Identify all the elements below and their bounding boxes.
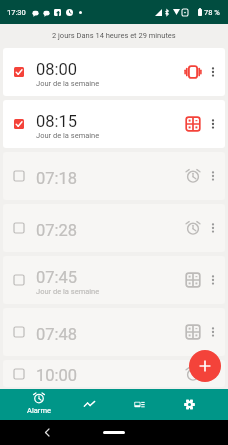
button[interactable]: 08:00 (3, 48, 225, 96)
staticText: 17:30 (7, 8, 26, 17)
button[interactable]: More options (208, 171, 218, 181)
button[interactable]: 08:15 (3, 100, 225, 148)
button[interactable]: More options (208, 369, 218, 379)
staticText: 10:00 (36, 366, 78, 385)
staticText: 07:45 (36, 268, 78, 287)
button[interactable]: 10:00 (3, 360, 225, 387)
button[interactable]: Settings (164, 389, 214, 420)
button[interactable]: News (114, 389, 164, 420)
staticText: Alarme (27, 406, 51, 415)
staticText: 07:28 (36, 221, 78, 240)
button[interactable]: Alarms (14, 389, 64, 420)
staticText: 08:00 (36, 60, 78, 79)
button[interactable]: 07:45 (3, 256, 225, 304)
staticText: 08:15 (36, 112, 78, 131)
button[interactable]: Statistics (64, 389, 114, 420)
button[interactable]: More options (208, 119, 218, 129)
button[interactable]: 07:48 (3, 308, 225, 356)
staticText: 2 jours Dans 14 heures et 29 minutes (52, 31, 176, 40)
button[interactable]: More options (208, 223, 218, 233)
staticText: Jour de la semaine (36, 79, 100, 88)
button[interactable]: Add alarm (189, 350, 221, 382)
button[interactable]: More options (208, 327, 218, 337)
staticText: 07:48 (36, 325, 78, 344)
button[interactable]: 07:18 (3, 152, 225, 200)
button[interactable]: More options (208, 67, 218, 77)
staticText: 78 % (204, 8, 220, 17)
button[interactable]: 07:28 (3, 204, 225, 252)
staticText: Jour de la semaine (36, 287, 100, 296)
staticText: Jour de la semaine (36, 131, 100, 140)
button[interactable]: More options (208, 275, 218, 285)
staticText: 07:18 (36, 169, 78, 188)
